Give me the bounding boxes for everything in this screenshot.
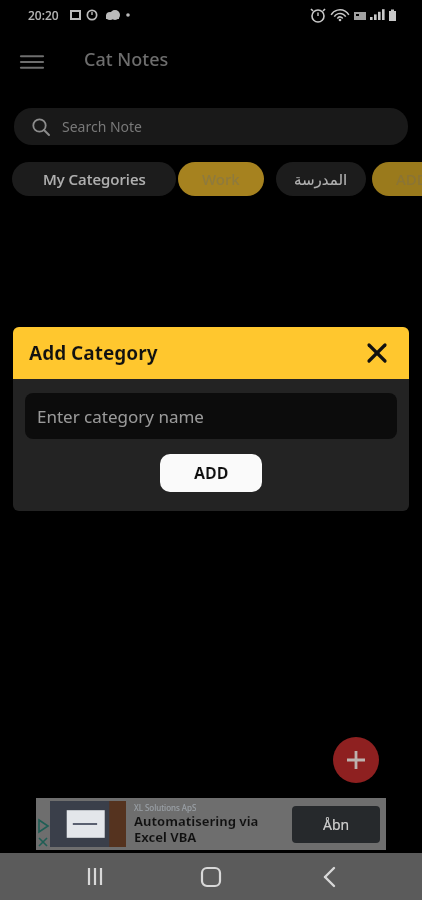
staticText: ADD	[194, 462, 229, 484]
button[interactable]: Enter category name	[25, 393, 397, 439]
staticText: Enter category name	[37, 405, 204, 428]
button[interactable]: My Categories	[12, 162, 176, 196]
button[interactable]: المدرسة	[276, 162, 366, 196]
staticText: 20:20	[28, 7, 59, 23]
button[interactable]: Recents	[65, 853, 125, 900]
button[interactable]: Add note	[333, 737, 379, 783]
button[interactable]: Home	[181, 853, 241, 900]
staticText: XL Solutions ApS	[134, 802, 197, 813]
staticText: ADD	[396, 169, 422, 189]
staticText: Work	[202, 169, 240, 189]
button[interactable]: ADD	[372, 162, 422, 196]
staticText: My Categories	[43, 169, 146, 189]
button[interactable]: ADD	[160, 454, 262, 492]
button[interactable]: Close	[359, 335, 395, 371]
staticText: Add Category	[29, 340, 158, 366]
button[interactable]: Search Note	[14, 108, 408, 145]
button[interactable]: Back	[300, 853, 360, 900]
staticText: Åbn	[323, 815, 350, 834]
staticText: Search Note	[62, 117, 143, 136]
staticText: المدرسة	[294, 171, 348, 188]
staticText: Automatisering via Excel VBA	[134, 812, 259, 845]
button[interactable]: Åbn	[292, 806, 380, 843]
button[interactable]: Work	[178, 162, 264, 196]
button[interactable]: Open navigation menu	[12, 42, 52, 82]
staticText: Cat Notes	[84, 47, 169, 72]
